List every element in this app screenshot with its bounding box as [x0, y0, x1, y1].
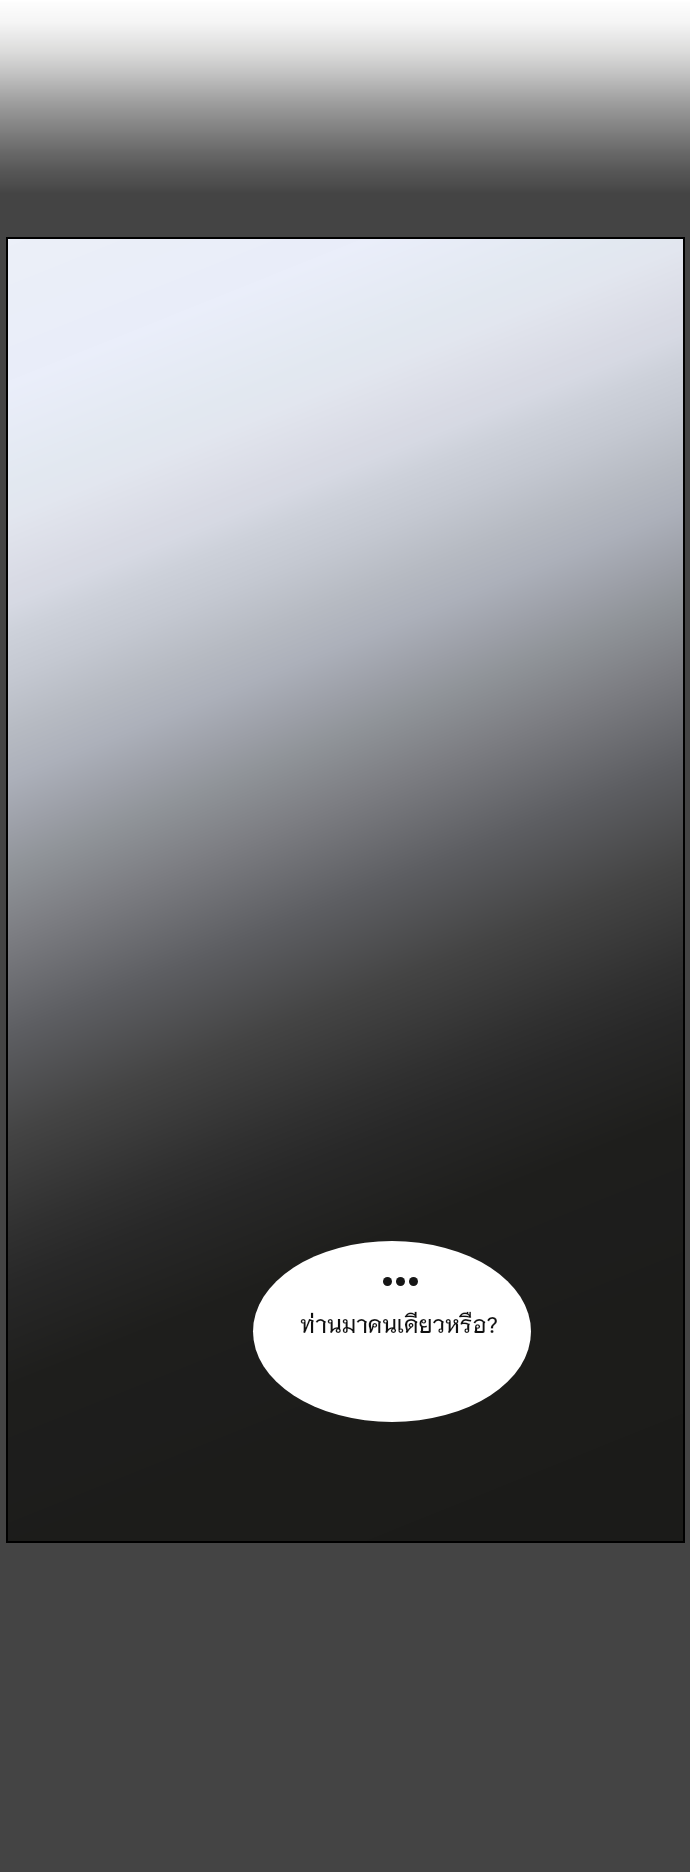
- button[interactable]: Speech balloon: ท่านมาคนเดียวหรือ?: [253, 1241, 531, 1422]
- staticText: ท่านมาคนเดียวหรือ?: [260, 1308, 538, 1337]
- button[interactable]: Comic panel, tap to toggle reader contro…: [8, 239, 683, 1541]
- button[interactable]: Previous comic panel: [0, 0, 690, 193]
